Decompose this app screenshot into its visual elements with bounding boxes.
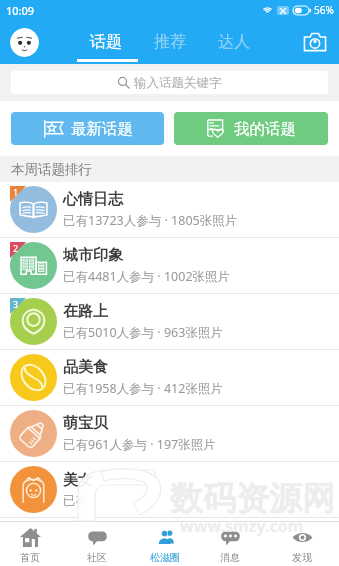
button[interactable]: 美女 <box>0 462 339 518</box>
staticText: 本周话题排行 <box>11 161 92 178</box>
staticText: 社区 <box>87 551 107 564</box>
staticText: 已有4481人参与 · 1002张照片 <box>63 268 231 285</box>
staticText: 已有961人参与 · 197张照片 <box>63 436 216 453</box>
button[interactable]: 首页 <box>0 522 60 566</box>
staticText: 10:09 <box>6 3 35 18</box>
button[interactable]: 话题 <box>74 20 138 64</box>
button[interactable]: 我的话题 <box>174 112 328 145</box>
staticText: 心情日志 <box>63 190 123 209</box>
staticText: 数码资源网 <box>170 478 335 520</box>
button[interactable]: 消息 <box>200 522 260 566</box>
staticText: 城市印象 <box>63 246 123 265</box>
button[interactable]: 社区 <box>67 522 127 566</box>
staticText: 已有13723人参与 · 1805张照片 <box>63 212 238 229</box>
button[interactable]: 3 <box>0 294 339 350</box>
staticText: 在路上 <box>63 302 108 321</box>
staticText: 萌宝贝 <box>63 414 108 433</box>
staticText: 已有5010人参与 · 963张照片 <box>63 324 223 341</box>
button[interactable]: 松滋圈 <box>135 522 195 566</box>
staticText: 达人 <box>218 32 250 52</box>
staticText: 话题 <box>90 32 122 52</box>
button[interactable]: 输入话题关键字 <box>11 71 328 94</box>
staticText: 品美食 <box>63 358 108 377</box>
staticText: 美女 <box>63 471 93 490</box>
staticText: 56% <box>314 3 334 17</box>
button[interactable]: 推荐 <box>138 20 202 64</box>
staticText: 松滋圈 <box>150 551 180 564</box>
staticText: 输入话题关键字 <box>134 75 222 91</box>
button[interactable]: 发现 <box>272 522 332 566</box>
staticText: www.smzy.com <box>180 515 304 537</box>
button[interactable]: Profile <box>10 28 39 57</box>
button[interactable]: 2 <box>0 238 339 294</box>
button[interactable]: 达人 <box>202 20 266 64</box>
button[interactable]: 品美食 <box>0 350 339 406</box>
staticText: 3 <box>13 298 19 310</box>
button[interactable]: Camera <box>301 28 329 56</box>
button[interactable]: 萌宝贝 <box>0 406 339 462</box>
staticText: 已有 <box>63 493 88 509</box>
button[interactable]: 最新话题 <box>11 112 164 145</box>
staticText: 消息 <box>220 551 240 564</box>
staticText: 首页 <box>20 551 40 564</box>
staticText: 我的话题 <box>234 119 296 139</box>
staticText: 发现 <box>292 551 312 564</box>
staticText: 1 <box>13 186 19 198</box>
staticText: 2 <box>13 242 19 254</box>
staticText: 推荐 <box>154 32 186 52</box>
staticText: 已有1958人参与 · 412张照片 <box>63 380 223 397</box>
button[interactable]: 1 <box>0 182 339 238</box>
staticText: 最新话题 <box>71 119 133 139</box>
